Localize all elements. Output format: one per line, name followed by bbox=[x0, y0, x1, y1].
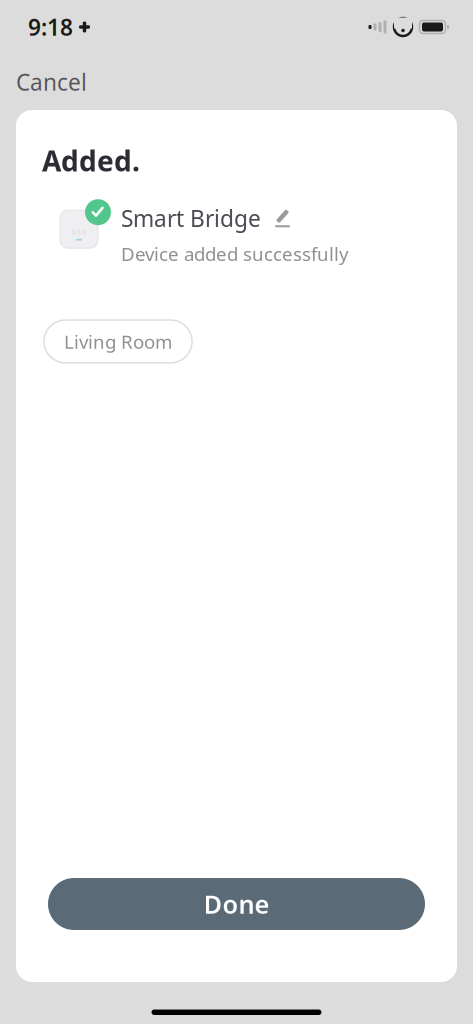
button[interactable]: Done bbox=[48, 878, 425, 930]
staticText: Added. bbox=[42, 142, 140, 179]
button[interactable]: Living Room bbox=[44, 320, 192, 363]
button[interactable]: Cancel bbox=[0, 57, 103, 107]
button[interactable]: Rename device bbox=[271, 206, 294, 231]
staticText: Cancel bbox=[16, 67, 87, 97]
staticText: Living Room bbox=[64, 329, 172, 354]
staticText: Smart Bridge bbox=[121, 203, 261, 233]
staticText: 9:18 bbox=[28, 12, 73, 42]
staticText: Done bbox=[203, 887, 269, 921]
staticText: Device added successfully bbox=[121, 241, 349, 266]
